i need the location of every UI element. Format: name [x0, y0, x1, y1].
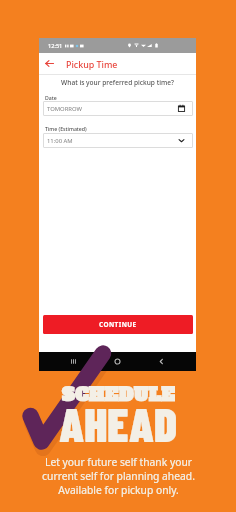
button[interactable]: Home [108, 352, 127, 371]
staticText: AHEAD [59, 394, 178, 451]
staticText: Let your future self thank your current … [42, 455, 195, 497]
button[interactable]: Back [152, 352, 171, 371]
staticText: Date [45, 94, 57, 101]
staticText: SCHEDULE [62, 382, 175, 407]
staticText: TOMORROW [47, 105, 83, 113]
staticText: 12:51 [48, 42, 63, 50]
staticText: 11:00 AM [47, 137, 73, 145]
button[interactable]: Recent apps [64, 352, 83, 371]
staticText: CONTINUE [99, 320, 137, 329]
button[interactable]: 11:00 AM [43, 133, 193, 148]
button[interactable]: Back [39, 53, 60, 74]
staticText: Time (Estimated) [45, 125, 87, 132]
button[interactable]: Pickup Time [66, 58, 118, 70]
button[interactable]: TOMORROW [43, 101, 193, 116]
button[interactable]: CONTINUE [43, 315, 193, 334]
staticText: What is your preferred pickup time? [61, 78, 174, 87]
